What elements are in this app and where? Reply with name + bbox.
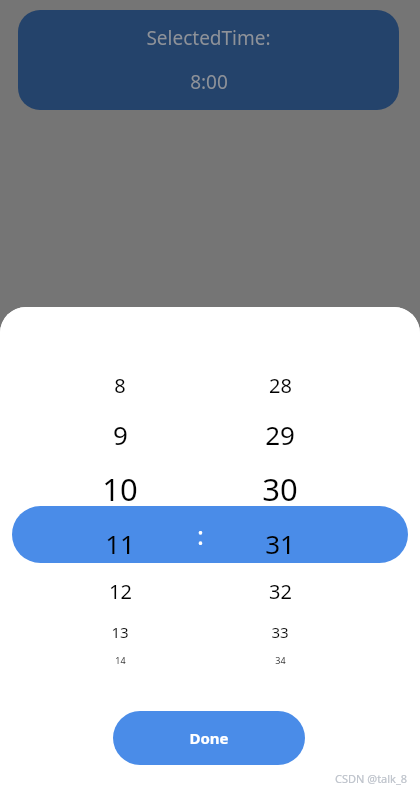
button[interactable] [12,506,408,563]
button[interactable]: 28 [220,363,340,408]
button[interactable]: 8 [60,363,180,408]
staticText: 28 [269,372,292,399]
button[interactable]: 10 [60,460,180,517]
staticText: 14 [115,654,126,666]
staticText: 12 [109,578,132,605]
button[interactable]: 12 [60,569,180,614]
staticText: 33 [271,622,289,642]
staticText: 32 [269,578,292,605]
staticText: 11 [105,526,135,561]
button[interactable]: 11 [60,517,180,569]
staticText: 13 [111,622,129,642]
button[interactable]: 32 [220,569,340,614]
staticText: CSDN @talk_8 [335,771,408,786]
staticText: 34 [275,654,286,666]
staticText: : [197,517,204,552]
button[interactable]: 9 [60,408,180,460]
button[interactable]: 13 [60,614,180,650]
button[interactable]: 33 [220,614,340,650]
button[interactable]: 14 [60,650,180,670]
button[interactable]: Done [113,711,305,765]
button[interactable]: SelectedTime: [18,10,399,110]
staticText: 8:00 [190,69,228,95]
staticText: 31 [265,526,295,561]
staticText: 10 [102,468,138,510]
button[interactable]: 31 [220,517,340,569]
staticText: 8 [114,372,126,399]
staticText: Done [189,728,229,748]
button[interactable]: 30 [220,460,340,517]
button[interactable]: 34 [220,650,340,670]
button[interactable]: 29 [220,408,340,460]
staticText: 9 [113,417,128,452]
staticText: 29 [265,417,295,452]
staticText: SelectedTime: [146,25,271,51]
staticText: 30 [262,468,298,510]
